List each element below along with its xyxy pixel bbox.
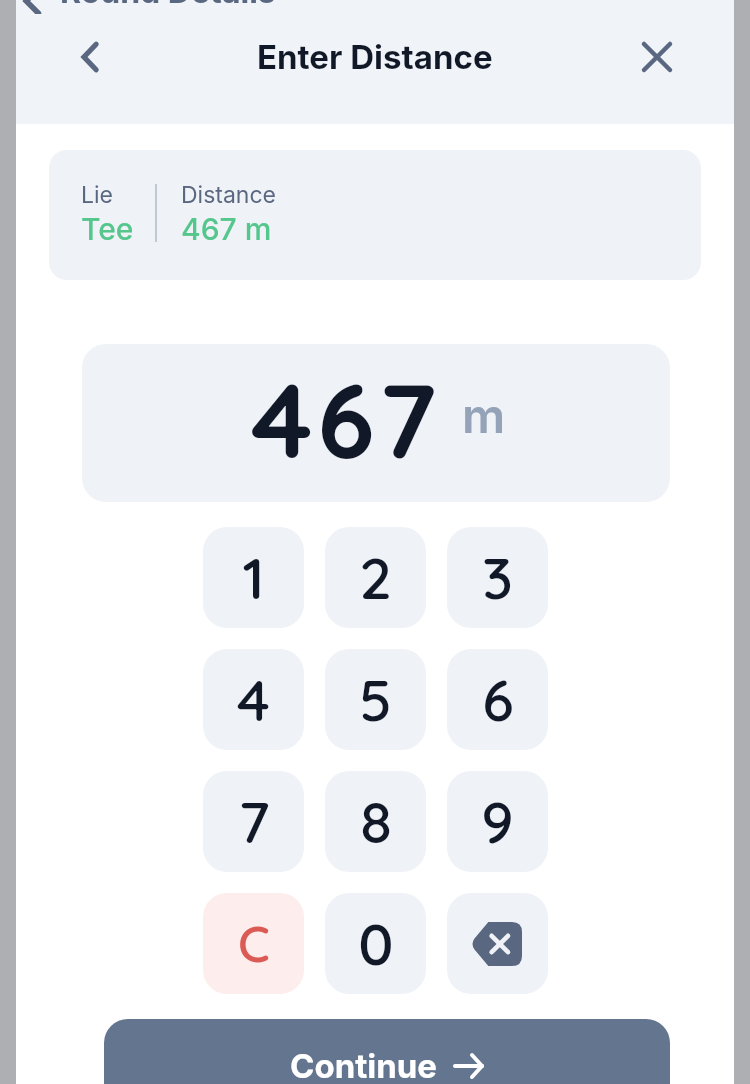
button[interactable]: 9 — [447, 771, 548, 872]
staticText: 467 — [251, 353, 441, 484]
staticText: Tee — [81, 211, 134, 247]
button[interactable]: 7 — [203, 771, 304, 872]
button[interactable]: Close — [633, 33, 681, 81]
button[interactable]: 0 — [325, 893, 426, 994]
staticText: Distance — [181, 181, 276, 209]
staticText: 6 — [482, 663, 514, 736]
button[interactable]: Back — [67, 33, 115, 81]
staticText: 9 — [481, 785, 514, 858]
button[interactable]: 6 — [447, 649, 548, 750]
button[interactable]: 1 — [203, 527, 304, 628]
button[interactable]: 3 — [447, 527, 548, 628]
staticText: Continue — [290, 1046, 437, 1084]
button[interactable]: C — [203, 893, 304, 994]
staticText: Round Details — [60, 0, 276, 11]
button[interactable]: 4 — [203, 649, 304, 750]
button[interactable]: 2 — [325, 527, 426, 628]
staticText: 3 — [482, 541, 513, 614]
staticText: 7 — [238, 785, 270, 858]
staticText: C — [238, 912, 270, 975]
staticText: 1 — [242, 541, 265, 614]
button[interactable]: 8 — [325, 771, 426, 872]
staticText: Lie — [81, 181, 113, 209]
staticText: 467 m — [181, 211, 272, 247]
staticText: 2 — [359, 541, 392, 614]
staticText: 4 — [237, 663, 270, 736]
staticText: 0 — [358, 907, 394, 980]
staticText: 8 — [360, 785, 392, 858]
staticText: 5 — [359, 663, 392, 736]
staticText: Enter Distance — [257, 37, 493, 77]
button[interactable]: Backspace — [447, 893, 548, 994]
staticText: m — [462, 386, 506, 444]
button[interactable]: Continue — [104, 1019, 670, 1084]
button[interactable]: 5 — [325, 649, 426, 750]
